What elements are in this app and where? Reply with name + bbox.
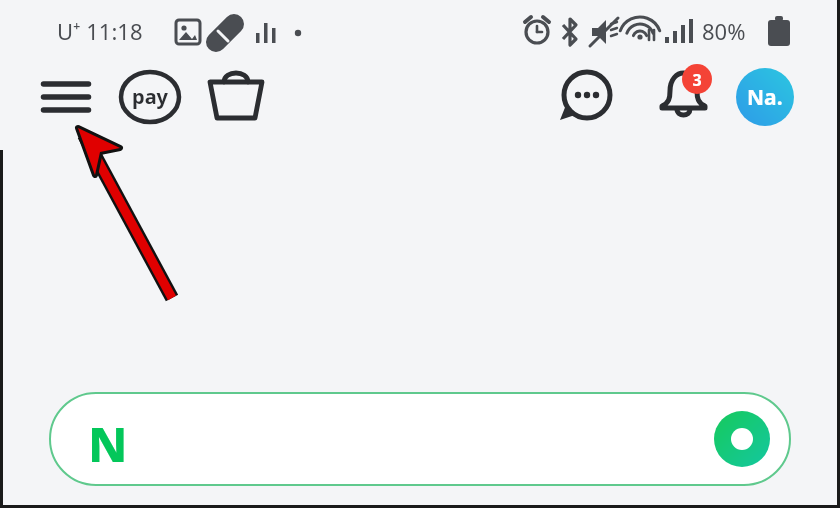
button[interactable]: Search [50, 393, 790, 485]
staticText: pay [132, 83, 169, 110]
staticText: 3 [690, 69, 704, 89]
button[interactable]: Shopping bag [206, 68, 266, 126]
button[interactable]: Profile [736, 68, 794, 126]
staticText: N [88, 411, 128, 476]
button[interactable]: Chat [557, 70, 613, 124]
staticText: U⁺ 11:18 [57, 16, 143, 46]
button[interactable]: Pay [120, 70, 180, 124]
staticText: 80% [702, 16, 746, 46]
button[interactable]: Menu [36, 70, 96, 124]
button[interactable]: Notifications, 3 new [652, 62, 714, 124]
staticText: Na. [747, 83, 783, 112]
